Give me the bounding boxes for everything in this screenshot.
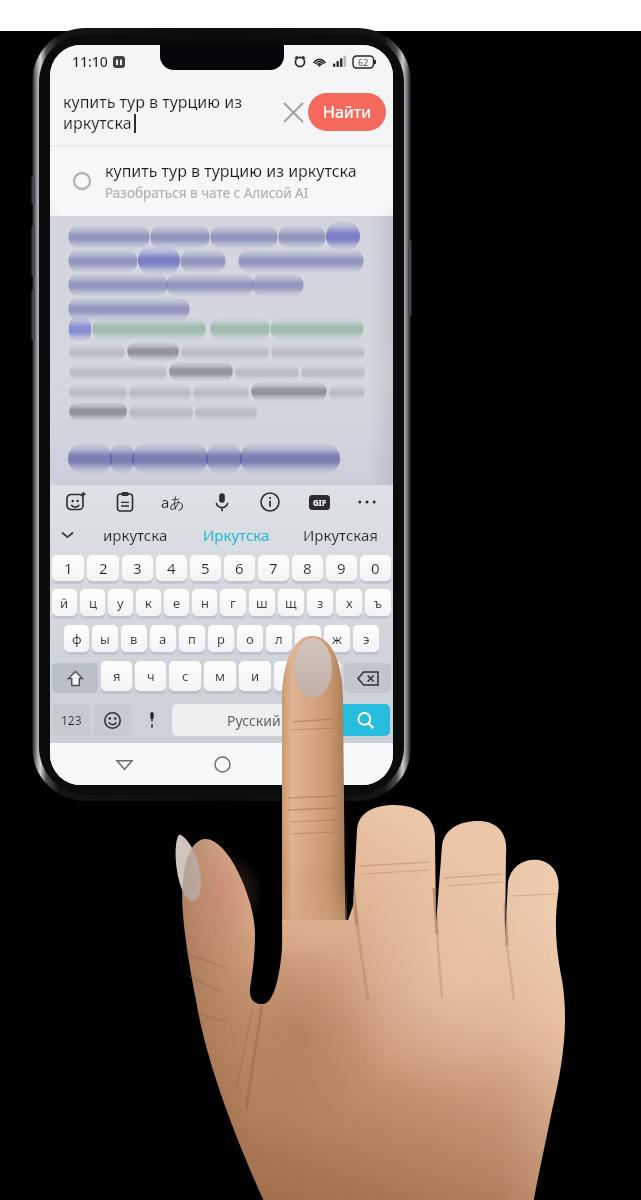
button[interactable]: Shift: [52, 663, 98, 693]
button[interactable]: Translate: [158, 487, 188, 517]
staticText: 0: [371, 558, 380, 578]
staticText: 6: [235, 558, 244, 578]
staticText: ц: [89, 594, 97, 612]
staticText: м: [215, 667, 225, 685]
button[interactable]: ц: [80, 589, 105, 616]
button[interactable]: ч: [135, 661, 166, 691]
staticText: ж: [332, 630, 342, 648]
button[interactable]: Иркутская: [287, 519, 393, 550]
button[interactable]: Clear text: [274, 93, 312, 131]
button[interactable]: Русский: [172, 704, 336, 736]
staticText: щ: [285, 594, 297, 612]
button[interactable]: к: [136, 589, 161, 616]
staticText: 1: [64, 558, 73, 578]
staticText: э: [363, 630, 370, 648]
staticText: е: [173, 594, 181, 612]
button[interactable]: 6: [224, 555, 255, 581]
button[interactable]: GIF: [304, 487, 334, 517]
button[interactable]: иркутска: [84, 519, 186, 550]
staticText: GIF: [313, 497, 327, 508]
button[interactable]: Иркутска: [186, 519, 287, 550]
button[interactable]: 8: [292, 555, 323, 581]
button[interactable]: н: [192, 589, 217, 616]
button[interactable]: Backspace: [344, 663, 391, 693]
button[interactable]: 7: [258, 555, 289, 581]
button[interactable]: у: [108, 589, 133, 616]
button[interactable]: с: [169, 661, 201, 691]
staticText: ч: [147, 667, 155, 685]
button[interactable]: Stickers: [61, 487, 91, 517]
button[interactable]: х: [336, 589, 362, 616]
staticText: д: [304, 630, 312, 648]
button[interactable]: я: [101, 661, 132, 691]
staticText: к: [145, 594, 152, 612]
button[interactable]: Voice: [135, 704, 168, 736]
staticText: 11:10: [72, 52, 108, 71]
button[interactable]: т: [274, 661, 306, 691]
staticText: х: [346, 594, 353, 612]
button[interactable]: м: [204, 661, 236, 691]
button[interactable]: э: [353, 625, 379, 652]
staticText: н: [201, 594, 209, 612]
button[interactable]: Найти: [308, 93, 386, 131]
button[interactable]: п: [179, 625, 205, 652]
staticText: купить тур в турцию из иркутска: [63, 91, 281, 134]
button[interactable]: ф: [64, 625, 89, 652]
staticText: у: [117, 594, 124, 612]
button[interactable]: й: [52, 589, 77, 616]
button[interactable]: ь: [309, 661, 341, 691]
button[interactable]: Info: [255, 487, 285, 517]
staticText: Иркутская: [303, 525, 378, 545]
button[interactable]: Home: [199, 743, 245, 785]
button[interactable]: 5: [190, 555, 221, 581]
button[interactable]: купить тур в турцию из иркутска: [50, 146, 393, 216]
button[interactable]: щ: [278, 589, 304, 616]
button[interactable]: ъ: [365, 589, 391, 616]
staticText: 9: [337, 558, 346, 578]
staticText: 4: [167, 558, 176, 578]
staticText: с: [182, 667, 189, 685]
button[interactable]: и: [239, 661, 271, 691]
button[interactable]: р: [208, 625, 234, 652]
staticText: т: [287, 667, 294, 685]
button[interactable]: 3: [122, 555, 153, 581]
button[interactable]: Emoji: [94, 704, 131, 736]
button[interactable]: ш: [249, 589, 275, 616]
staticText: Русский: [227, 711, 281, 730]
button[interactable]: ж: [324, 625, 350, 652]
button[interactable]: л: [266, 625, 292, 652]
staticText: р: [217, 630, 225, 648]
button[interactable]: д: [295, 625, 321, 652]
button[interactable]: з: [307, 589, 333, 616]
staticText: и: [251, 667, 260, 685]
staticText: ъ: [374, 594, 383, 612]
staticText: в: [130, 630, 138, 648]
button[interactable]: Language: [296, 743, 342, 785]
button[interactable]: а: [150, 625, 176, 652]
button[interactable]: в: [121, 625, 147, 652]
button[interactable]: Search: [340, 704, 390, 736]
button[interactable]: 0: [360, 555, 391, 581]
staticText: л: [275, 630, 283, 648]
button[interactable]: Clipboard: [110, 487, 140, 517]
button[interactable]: 1: [52, 555, 84, 581]
button[interactable]: Voice input: [207, 487, 237, 517]
staticText: п: [188, 630, 196, 648]
button[interactable]: ы: [92, 625, 118, 652]
button[interactable]: More: [352, 487, 382, 517]
staticText: аあ: [161, 492, 185, 512]
button[interactable]: 123: [53, 704, 90, 736]
button[interactable]: Back: [101, 743, 147, 785]
staticText: я: [113, 667, 121, 685]
staticText: иркутска: [103, 525, 168, 545]
button[interactable]: 4: [156, 555, 187, 581]
button[interactable]: Expand suggestions: [50, 519, 84, 550]
button[interactable]: е: [164, 589, 189, 616]
staticText: о: [246, 630, 254, 648]
button[interactable]: 9: [326, 555, 357, 581]
staticText: Иркутска: [203, 525, 270, 545]
button[interactable]: 2: [87, 555, 119, 581]
button[interactable]: г: [220, 589, 246, 616]
button[interactable]: о: [237, 625, 263, 652]
